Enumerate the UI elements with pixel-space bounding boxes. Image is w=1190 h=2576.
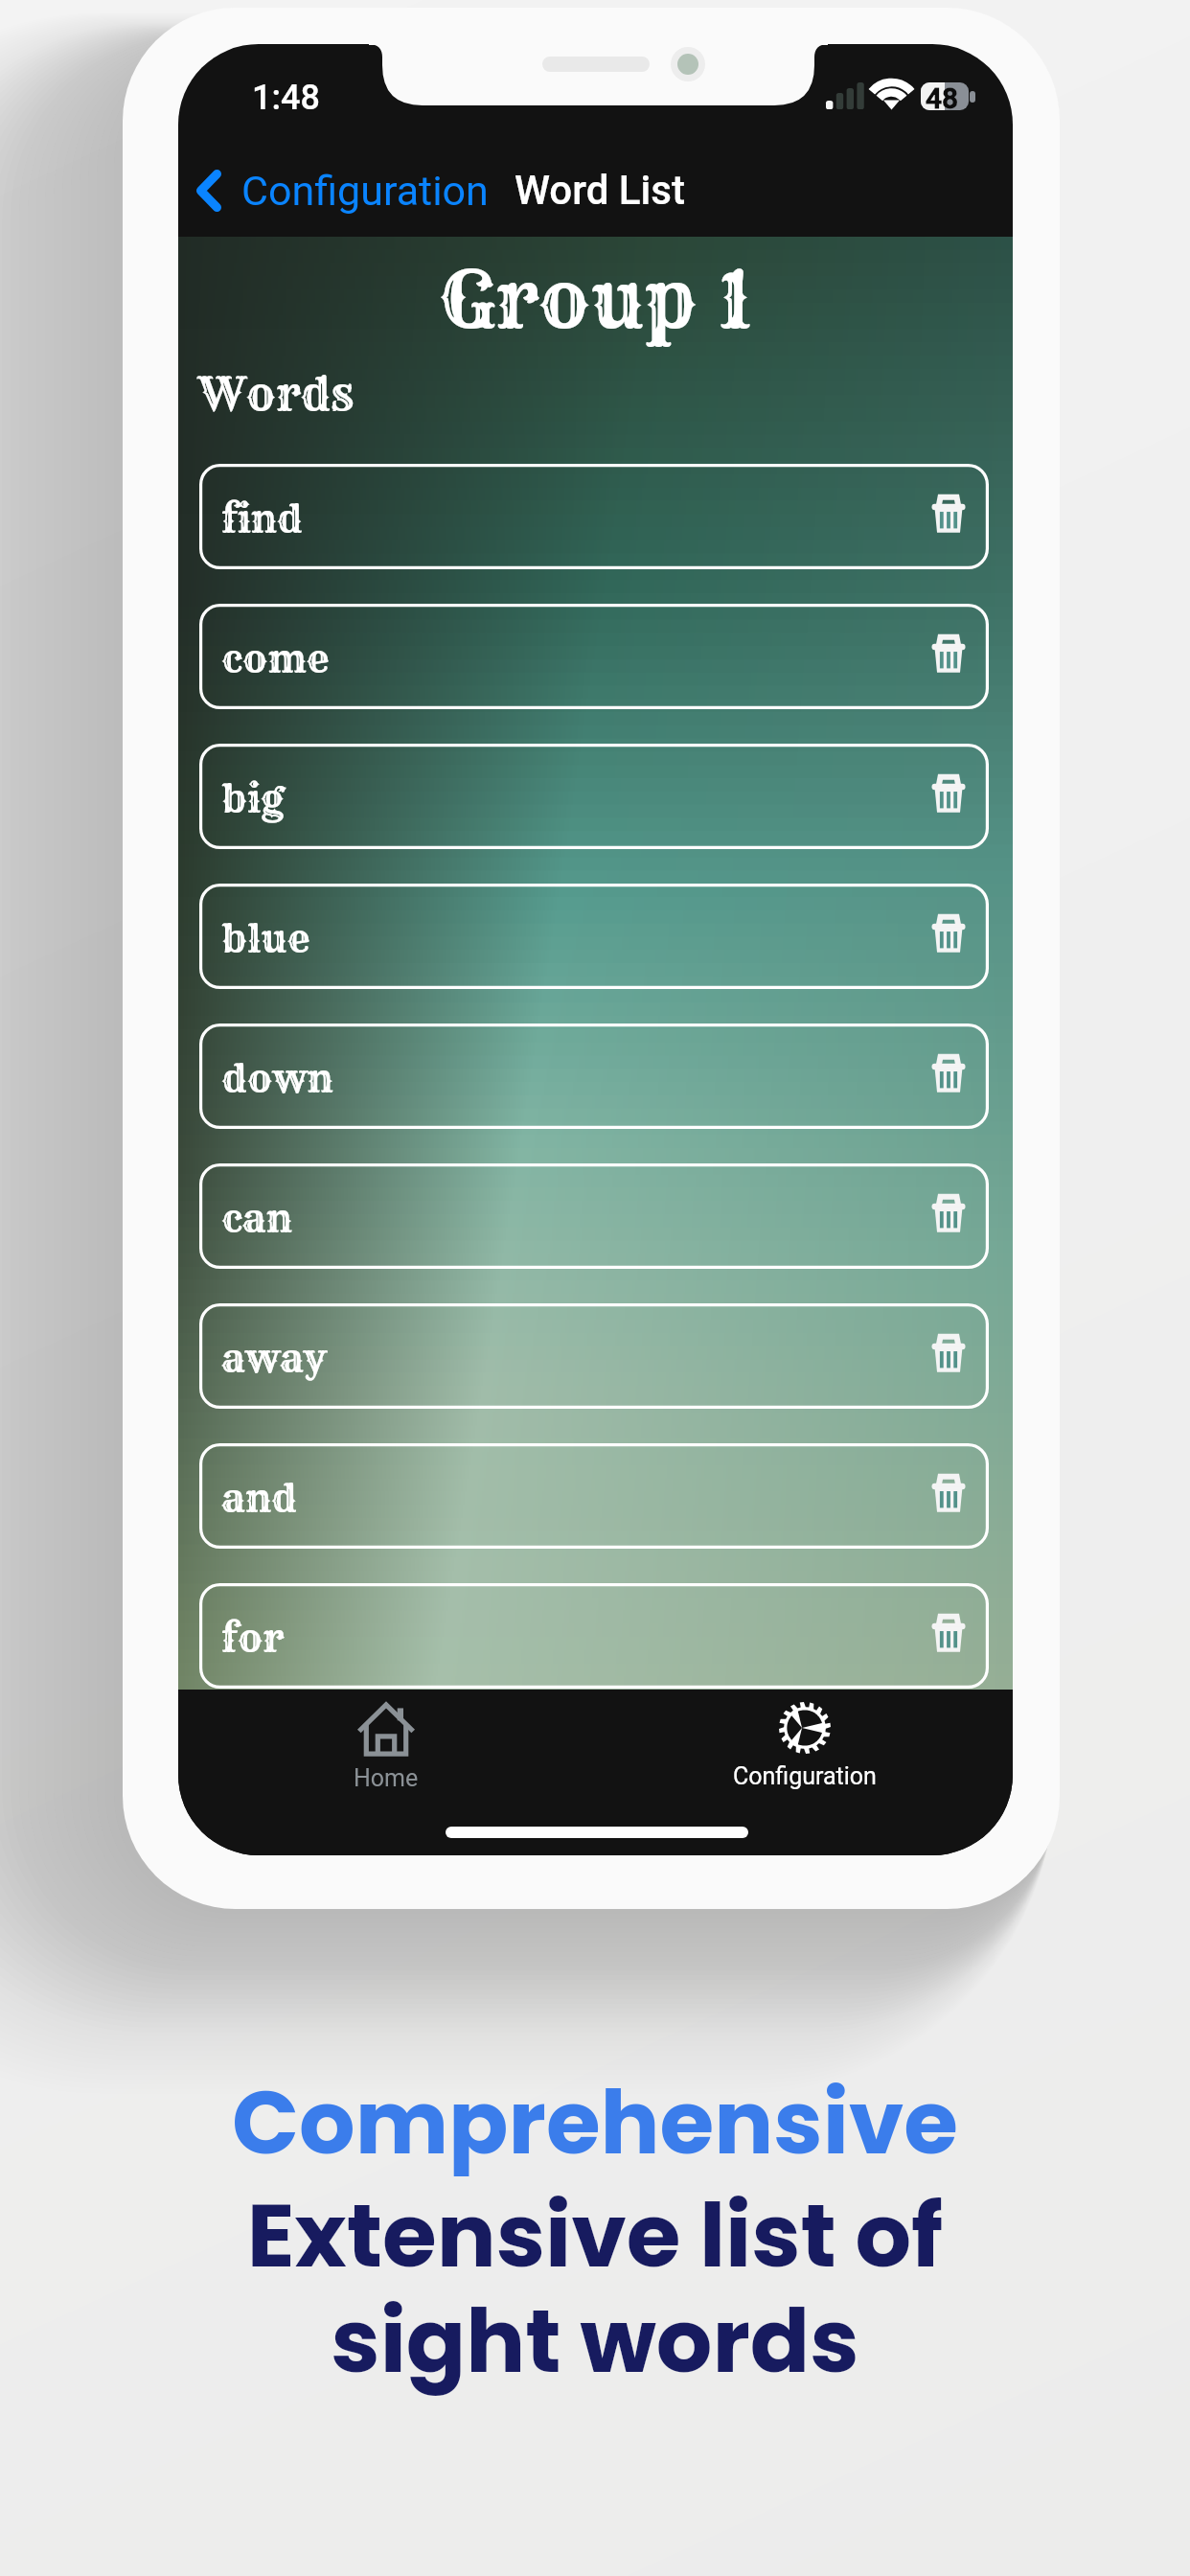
staticText: 1:48 bbox=[252, 78, 320, 118]
staticText: can bbox=[221, 1195, 292, 1243]
button[interactable]: big bbox=[199, 744, 989, 849]
button[interactable]: away bbox=[199, 1303, 989, 1409]
button[interactable]: blue bbox=[199, 884, 989, 989]
button[interactable]: Delete blue bbox=[919, 907, 978, 966]
button[interactable]: for bbox=[199, 1583, 989, 1689]
staticText: down bbox=[221, 1055, 333, 1103]
button[interactable]: and bbox=[199, 1443, 989, 1549]
button[interactable]: can bbox=[199, 1163, 989, 1269]
staticText: and bbox=[221, 1475, 297, 1523]
staticText: Comprehensive bbox=[0, 2060, 1190, 2184]
button[interactable]: Delete big bbox=[919, 767, 978, 826]
button[interactable]: find bbox=[199, 464, 989, 569]
button[interactable]: Configuration bbox=[690, 1690, 920, 1805]
button[interactable]: Delete can bbox=[919, 1186, 978, 1246]
staticText: blue bbox=[221, 915, 310, 963]
staticText: Configuration bbox=[241, 167, 487, 215]
staticText: 48 bbox=[926, 81, 959, 115]
staticText: Configuration bbox=[733, 1762, 877, 1790]
staticText: Home bbox=[354, 1764, 419, 1792]
button[interactable]: Configuration bbox=[190, 154, 487, 227]
button[interactable]: Delete away bbox=[919, 1326, 978, 1386]
button[interactable]: Delete find bbox=[919, 487, 978, 546]
button[interactable]: down bbox=[199, 1023, 989, 1129]
button[interactable]: Delete come bbox=[919, 627, 978, 686]
staticText: away bbox=[221, 1335, 327, 1383]
staticText: come bbox=[221, 635, 330, 683]
button[interactable]: come bbox=[199, 604, 989, 709]
button[interactable]: Home bbox=[271, 1690, 501, 1805]
staticText: Words bbox=[198, 366, 355, 423]
button[interactable]: Delete for bbox=[919, 1606, 978, 1666]
staticText: Extensive list of sight words bbox=[0, 2173, 1190, 2403]
staticText: for bbox=[221, 1615, 285, 1663]
staticText: find bbox=[221, 495, 303, 543]
button[interactable]: Delete down bbox=[919, 1046, 978, 1106]
staticText: big bbox=[221, 775, 284, 823]
staticText: Group 1 bbox=[178, 250, 1013, 349]
staticText: Word List bbox=[515, 167, 685, 214]
button[interactable]: Delete and bbox=[919, 1466, 978, 1526]
